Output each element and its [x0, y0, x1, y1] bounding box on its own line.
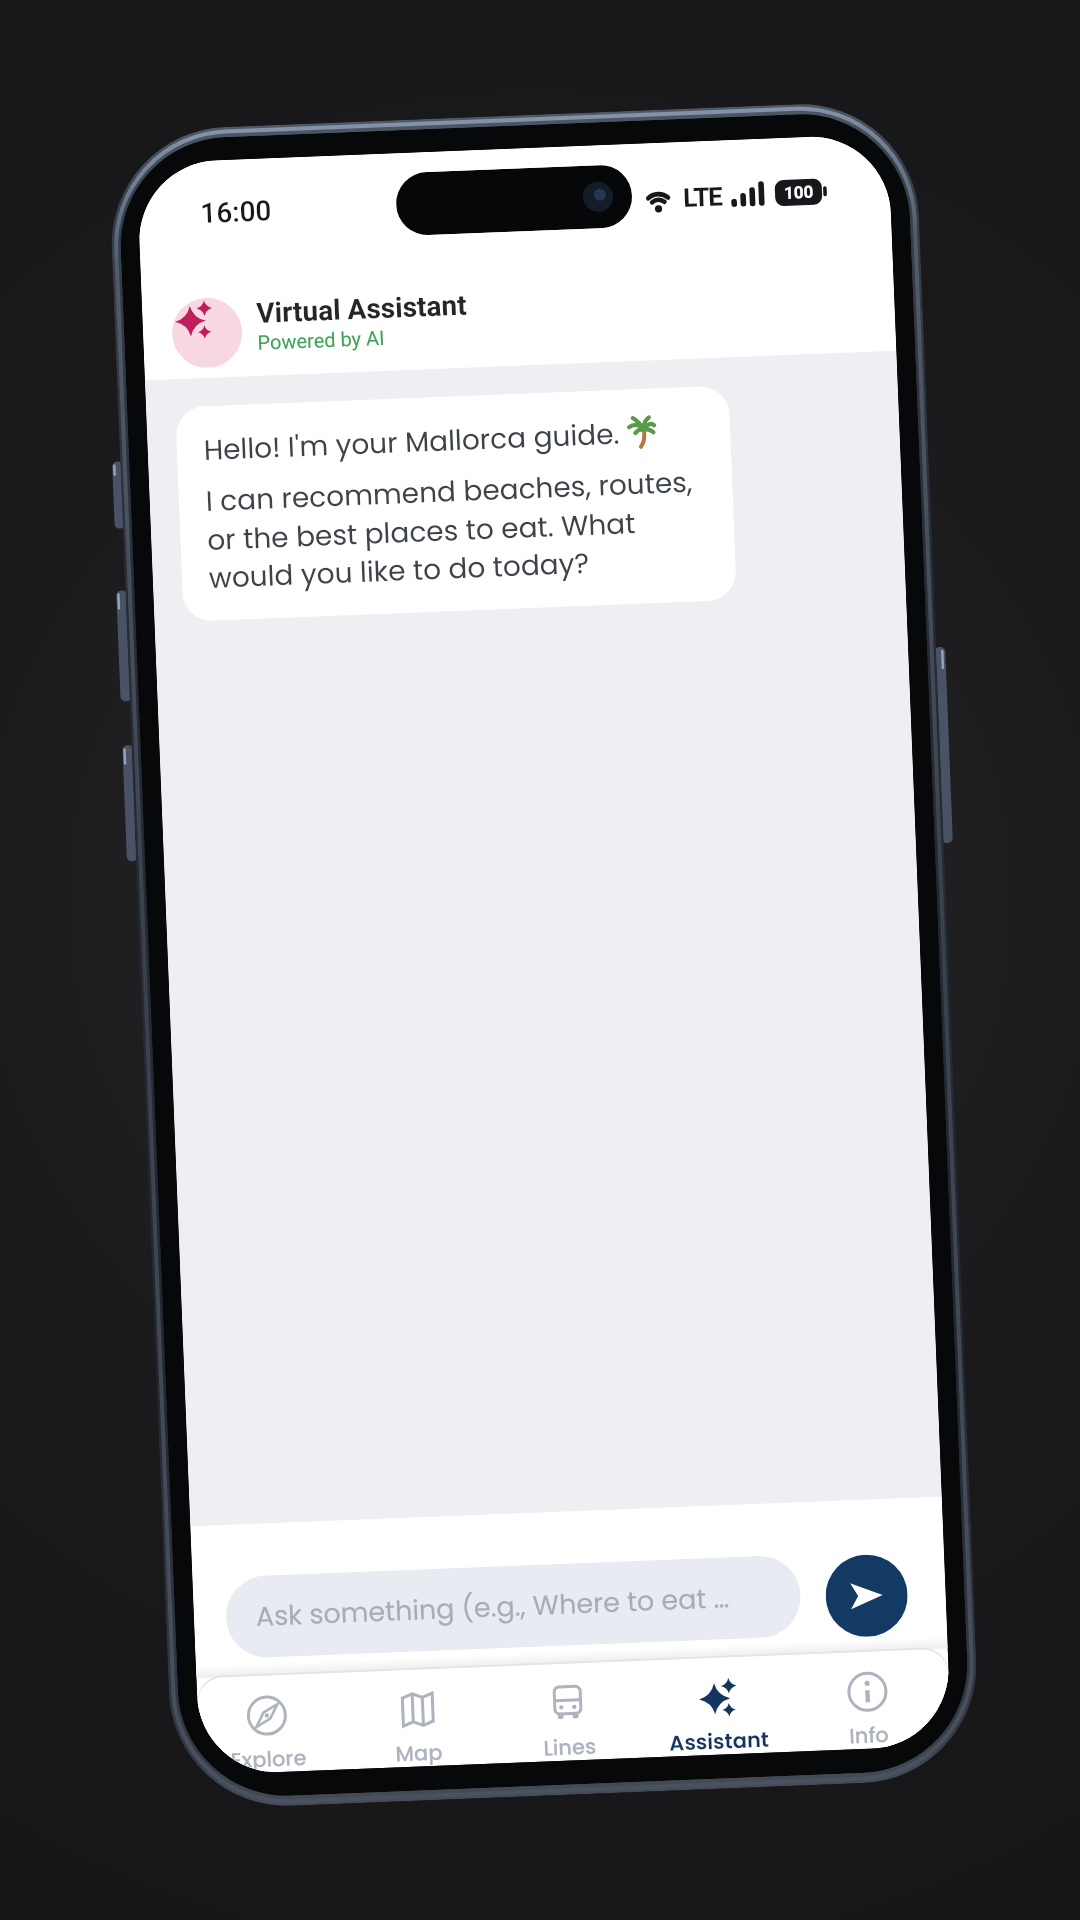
staticText: Explore: [230, 1743, 307, 1773]
button[interactable]: [824, 1553, 909, 1638]
button[interactable]: Map: [340, 1667, 495, 1769]
button[interactable]: Ask something (e.g., Where to eat …: [224, 1554, 802, 1659]
button[interactable]: Lines: [491, 1661, 645, 1763]
staticText: Assistant: [669, 1725, 770, 1756]
button[interactable]: Assistant: [641, 1655, 795, 1757]
staticText: LTE: [682, 181, 723, 213]
staticText: 100: [784, 182, 814, 203]
staticText: 16:00: [200, 194, 273, 230]
button[interactable]: Info: [791, 1649, 945, 1751]
staticText: Map: [395, 1738, 443, 1766]
staticText: Info: [849, 1720, 890, 1749]
staticText: Ask something (e.g., Where to eat …: [255, 1579, 730, 1636]
button[interactable]: Explore: [196, 1673, 344, 1774]
staticText: I can recommend beaches, routes, or the …: [205, 463, 696, 598]
staticText: Virtual Assistant: [256, 288, 468, 330]
staticText: Lines: [543, 1732, 597, 1761]
staticText: Powered by AI: [257, 326, 386, 354]
staticText: Hello! I'm your Mallorca guide.: [203, 415, 620, 470]
